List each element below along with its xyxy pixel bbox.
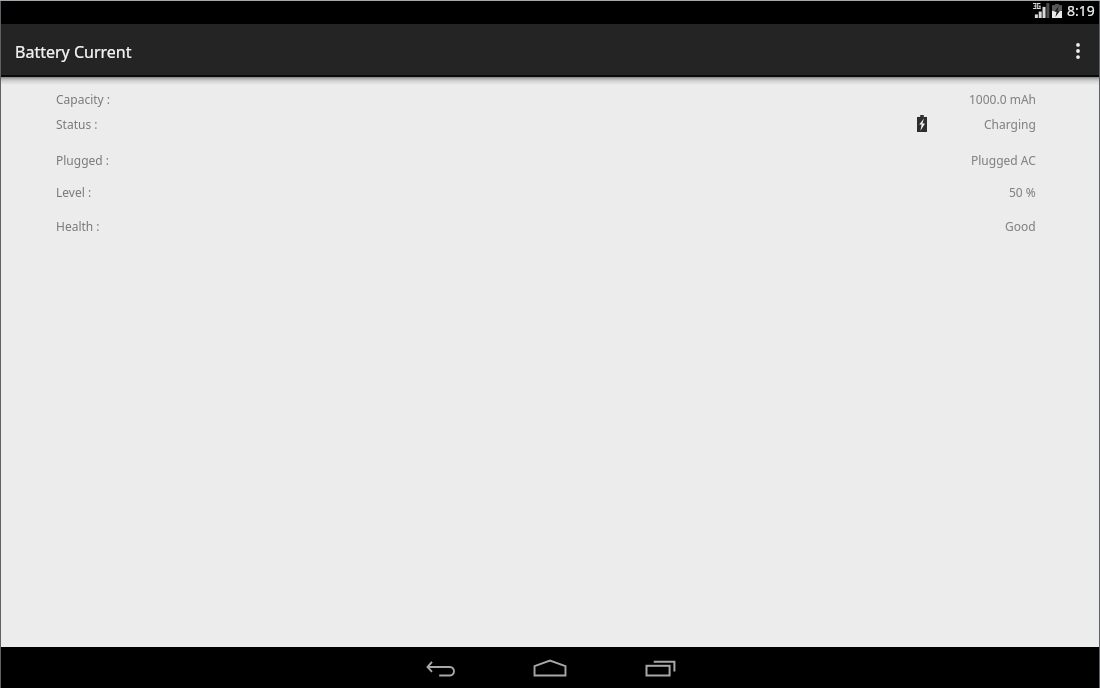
button[interactable]: Level : [0, 183, 1100, 200]
staticText: Capacity : [56, 91, 111, 107]
button[interactable]: Plugged : [0, 151, 1100, 168]
staticText: 1000.0 mAh [969, 91, 1036, 107]
button[interactable]: Health : [0, 217, 1100, 234]
staticText: 8:19 [1067, 1, 1095, 20]
staticText: Battery Current [15, 41, 132, 63]
staticText: Plugged : [56, 152, 110, 168]
button[interactable]: Status : [0, 115, 1100, 132]
staticText: Health : [56, 218, 100, 234]
button[interactable]: Recent apps [605, 647, 715, 688]
staticText: Good [1005, 218, 1036, 234]
staticText: 50 % [1009, 184, 1036, 200]
button[interactable]: Back [385, 647, 495, 688]
staticText: Plugged AC [971, 152, 1036, 168]
staticText: Status : [56, 116, 98, 132]
staticText: Level : [56, 184, 92, 200]
button[interactable]: Capacity : [0, 90, 1100, 107]
button[interactable]: More options [1056, 24, 1100, 75]
button[interactable]: Home [495, 647, 605, 688]
staticText: Charging [984, 116, 1036, 132]
